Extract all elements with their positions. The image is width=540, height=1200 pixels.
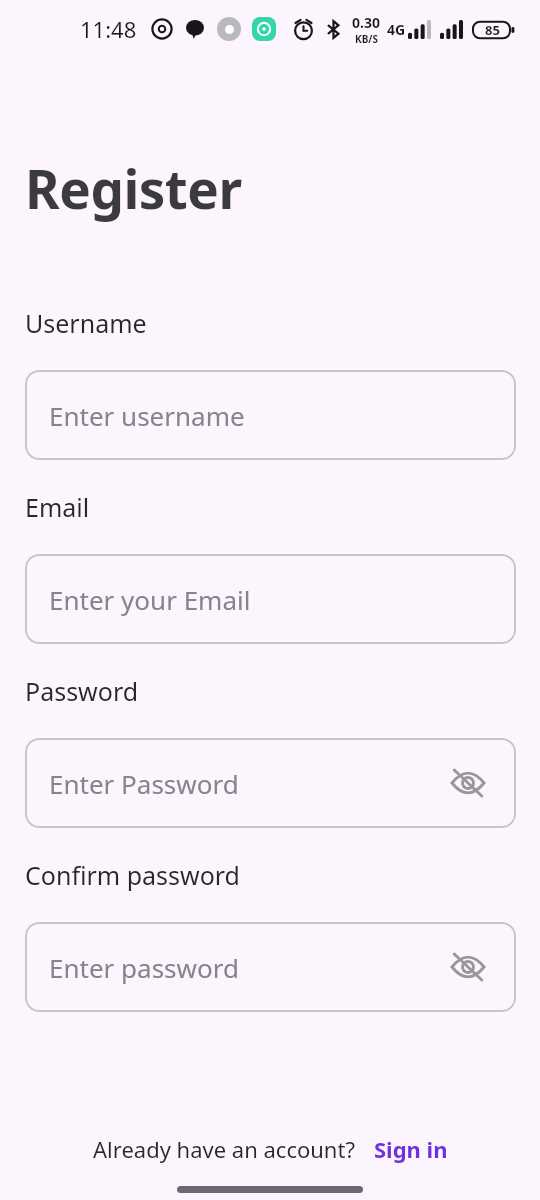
- staticText: Enter Password: [49, 766, 239, 801]
- button[interactable]: Show password: [446, 945, 490, 989]
- staticText: Enter username: [49, 398, 245, 433]
- staticText: Already have an account?: [93, 1134, 355, 1164]
- staticText: 4G: [387, 20, 406, 39]
- staticText: Confirm password: [25, 858, 240, 892]
- staticText: 85: [485, 21, 500, 39]
- staticText: Enter password: [49, 950, 239, 985]
- button[interactable]: Enter your Email: [25, 554, 516, 644]
- staticText: Register: [25, 152, 242, 224]
- staticText: 0.30: [352, 13, 380, 32]
- staticText: Enter your Email: [49, 582, 251, 617]
- button[interactable]: Enter password: [25, 922, 516, 1012]
- button[interactable]: Enter username: [25, 370, 516, 460]
- staticText: Sign in: [374, 1134, 448, 1164]
- button[interactable]: Sign in: [374, 1134, 448, 1164]
- staticText: 11:48: [80, 14, 137, 44]
- staticText: Email: [25, 490, 90, 524]
- button[interactable]: Enter Password: [25, 738, 516, 828]
- staticText: Password: [25, 674, 139, 708]
- staticText: KB/S: [355, 32, 378, 46]
- staticText: Username: [25, 306, 147, 340]
- button[interactable]: Show password: [446, 761, 490, 805]
